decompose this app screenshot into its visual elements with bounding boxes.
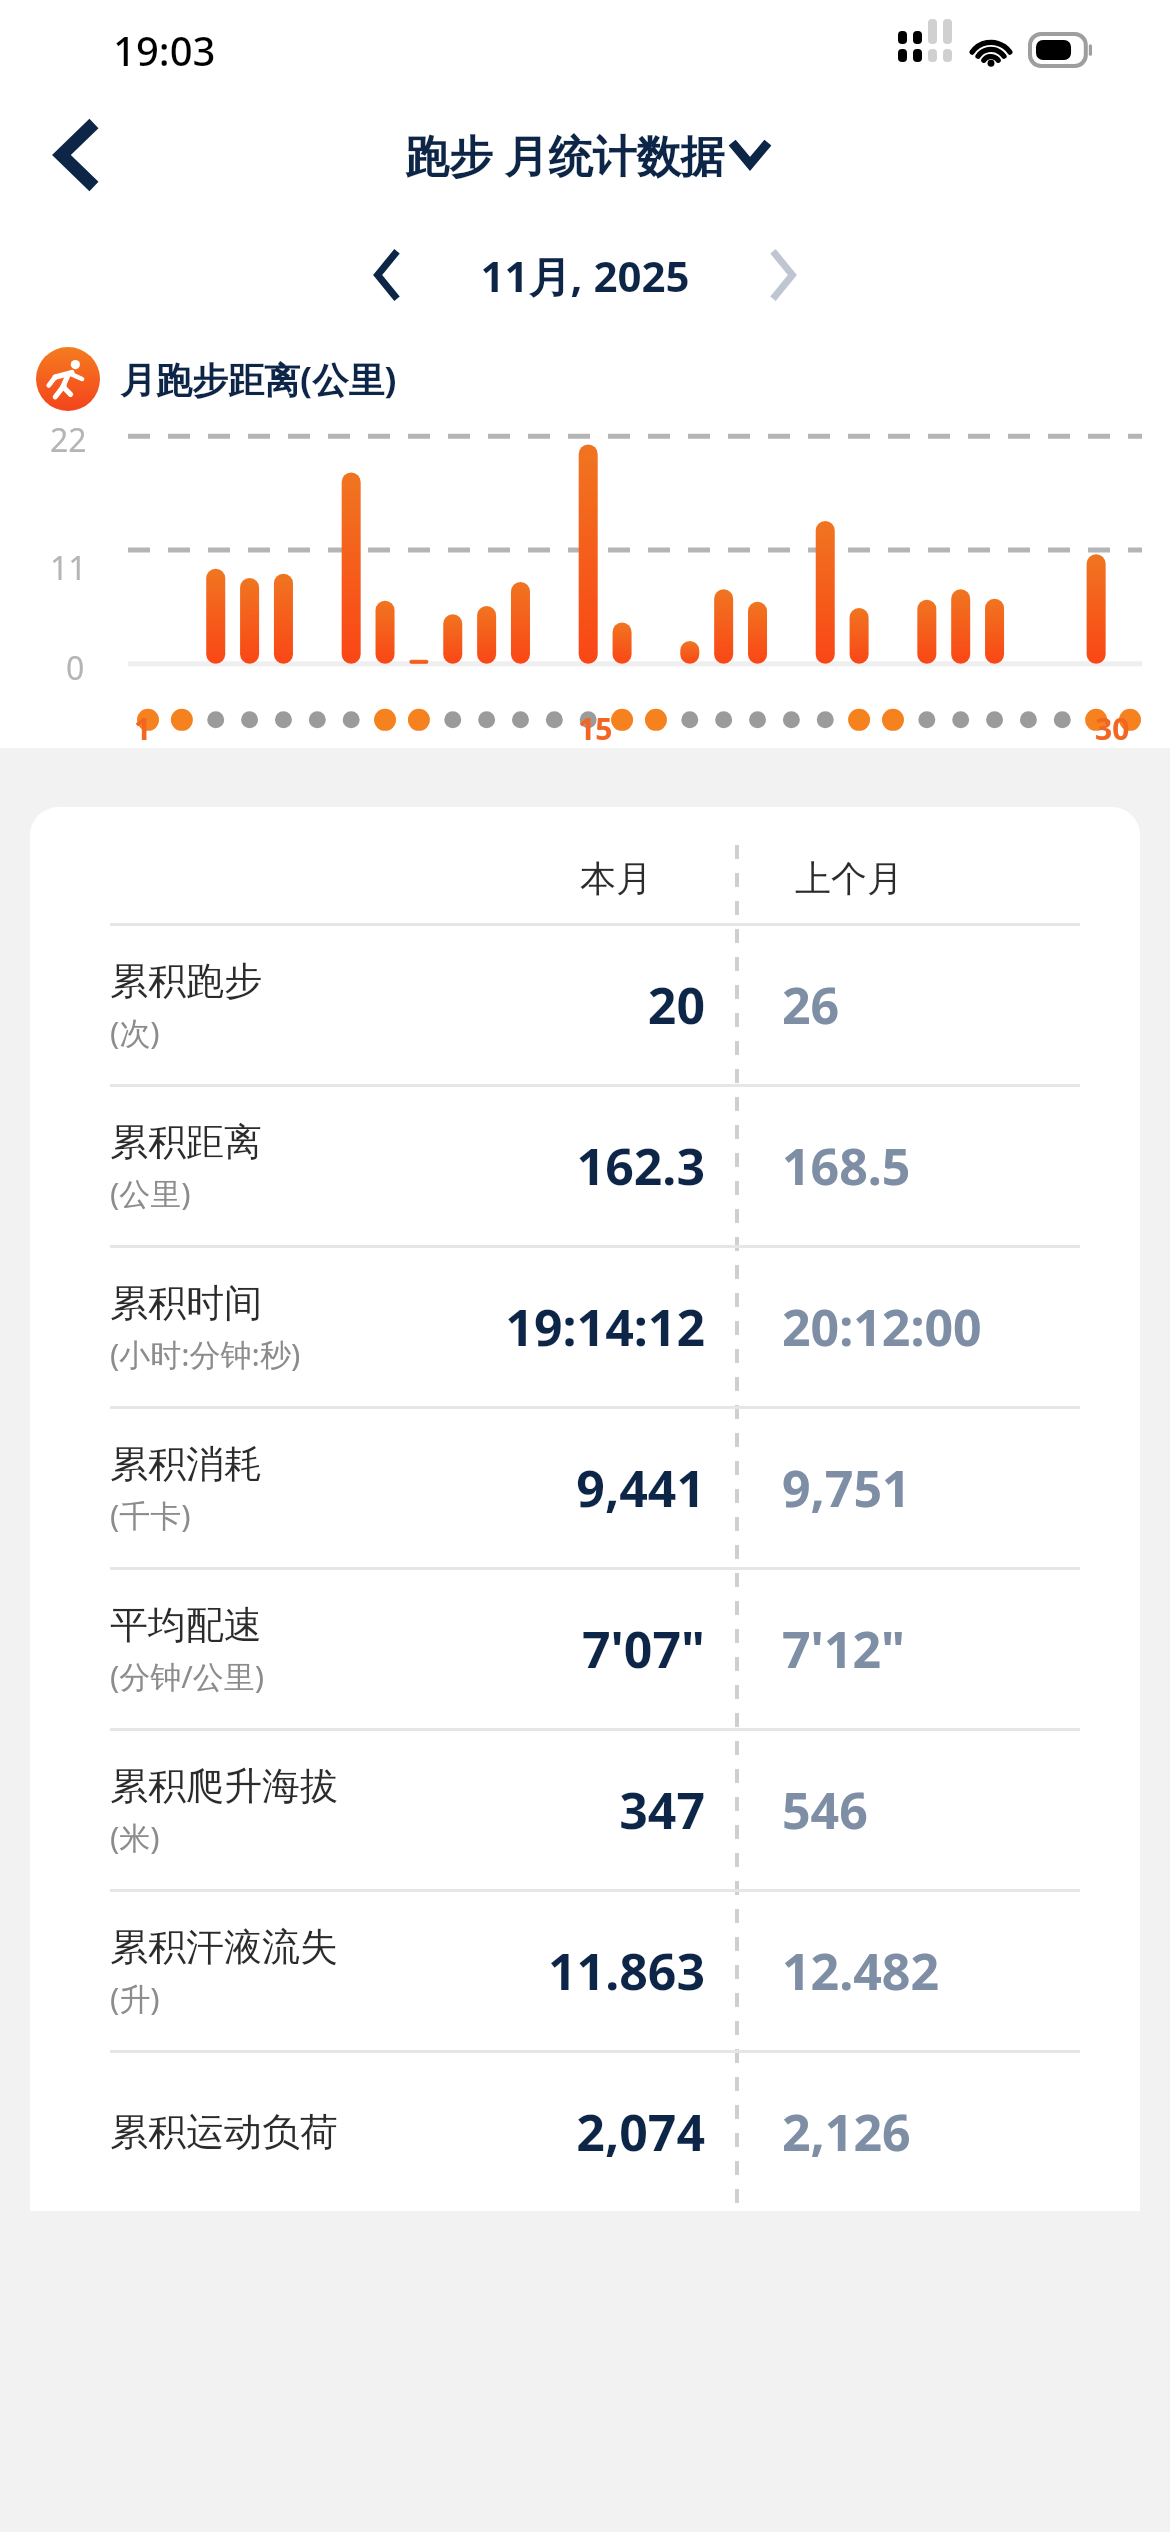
staticText: 9,751 xyxy=(782,1454,911,1522)
staticText: 20:12:00 xyxy=(782,1293,982,1361)
button[interactable]: 累积距离 xyxy=(30,1087,1140,1245)
staticText: (升) xyxy=(110,1977,160,2019)
staticText: (次) xyxy=(110,1011,160,1053)
button[interactable]: 累积爬升海拔 xyxy=(30,1731,1140,1889)
staticText: 2,126 xyxy=(782,2098,911,2166)
staticText: 7'12" xyxy=(782,1615,906,1683)
button[interactable]: Back xyxy=(30,110,120,200)
staticText: 19:03 xyxy=(113,23,216,77)
staticText: 累积跑步 xyxy=(110,957,262,1005)
staticText: 累积汗液流失 xyxy=(110,1923,338,1971)
staticText: 7'07" xyxy=(581,1615,705,1683)
staticText: 累积时间 xyxy=(110,1279,262,1327)
staticText: 平均配速 xyxy=(110,1601,262,1649)
staticText: 1 xyxy=(134,708,152,748)
staticText: (分钟/公里) xyxy=(110,1655,265,1697)
button[interactable]: 累积跑步 xyxy=(30,926,1140,1084)
staticText: 11.863 xyxy=(547,1937,705,2005)
staticText: 累积消耗 xyxy=(110,1440,262,1488)
staticText: 12.482 xyxy=(782,1937,940,2005)
button[interactable]: 跑步 月统计数据 xyxy=(405,125,765,185)
staticText: 跑步 月统计数据 xyxy=(405,125,725,185)
staticText: 11 xyxy=(50,546,87,590)
staticText: 546 xyxy=(782,1776,868,1844)
staticText: 30 xyxy=(1095,708,1130,748)
staticText: 月跑步距离(公里) xyxy=(120,355,397,404)
staticText: 26 xyxy=(782,971,840,1039)
staticText: 累积运动负荷 xyxy=(110,2108,338,2156)
staticText: 累积距离 xyxy=(110,1118,262,1166)
staticText: 168.5 xyxy=(782,1132,911,1200)
staticText: (公里) xyxy=(110,1172,191,1214)
button[interactable]: 累积运动负荷 xyxy=(30,2053,1140,2211)
staticText: 0 xyxy=(66,646,85,690)
button[interactable]: 累积时间 xyxy=(30,1248,1140,1406)
staticText: 9,441 xyxy=(576,1454,705,1522)
staticText: 20 xyxy=(647,971,705,1039)
staticText: 15 xyxy=(578,708,613,748)
staticText: 19:14:12 xyxy=(505,1293,705,1361)
button[interactable]: Previous month xyxy=(342,231,430,319)
staticText: (米) xyxy=(110,1816,160,1858)
staticText: 162.3 xyxy=(576,1132,705,1200)
staticText: 2,074 xyxy=(576,2098,705,2166)
staticText: (千卡) xyxy=(110,1494,191,1536)
button[interactable]: 累积汗液流失 xyxy=(30,1892,1140,2050)
staticText: 上个月 xyxy=(795,856,903,901)
staticText: 11月, 2025 xyxy=(480,247,690,304)
staticText: 本月 xyxy=(580,856,652,901)
staticText: (小时:分钟:秒) xyxy=(110,1333,301,1375)
staticText: 347 xyxy=(619,1776,705,1844)
button[interactable]: Next month xyxy=(740,231,828,319)
button[interactable]: 累积消耗 xyxy=(30,1409,1140,1567)
staticText: 累积爬升海拔 xyxy=(110,1762,338,1810)
button[interactable]: 平均配速 xyxy=(30,1570,1140,1728)
staticText: 22 xyxy=(50,418,87,462)
